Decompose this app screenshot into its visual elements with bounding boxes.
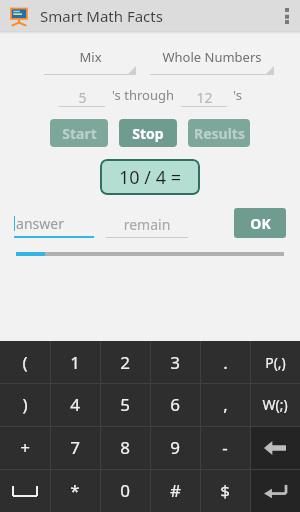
button[interactable]: 2 xyxy=(100,341,150,383)
button[interactable]: Mix xyxy=(44,47,136,75)
staticText: # xyxy=(170,479,181,502)
staticText: . xyxy=(223,351,228,374)
staticText: 7 xyxy=(70,436,80,459)
staticText: answer xyxy=(16,214,64,233)
button[interactable]: - xyxy=(200,426,250,469)
staticText: 's xyxy=(233,86,242,104)
button[interactable]: . xyxy=(200,341,250,383)
staticText: Whole Numbers xyxy=(162,48,262,66)
staticText: 9 xyxy=(170,436,180,459)
button[interactable]: Whole Numbers xyxy=(150,47,274,75)
button[interactable]: ) xyxy=(0,383,50,426)
button[interactable]: , xyxy=(200,383,250,426)
staticText: 3 xyxy=(170,351,180,374)
button[interactable]: 1 xyxy=(50,341,100,383)
staticText: Results xyxy=(194,124,245,143)
button[interactable]: W(;) xyxy=(250,383,300,426)
button[interactable]: 8 xyxy=(100,426,150,469)
staticText: 10 / 4 = xyxy=(119,165,181,190)
staticText: 2 xyxy=(120,351,130,374)
button[interactable]: Results xyxy=(188,119,250,147)
staticText: ( xyxy=(22,351,28,374)
button[interactable]: 3 xyxy=(150,341,200,383)
staticText: + xyxy=(20,436,30,459)
staticText: remain xyxy=(106,215,188,234)
button[interactable]: 9 xyxy=(150,426,200,469)
button[interactable]: Backspace xyxy=(250,426,300,469)
staticText: OK xyxy=(250,214,271,233)
button[interactable]: 6 xyxy=(150,383,200,426)
staticText: Mix xyxy=(79,48,102,66)
button[interactable]: 5 xyxy=(100,383,150,426)
button[interactable]: # xyxy=(150,469,200,512)
staticText: 's through xyxy=(112,86,174,104)
button[interactable]: 0 xyxy=(100,469,150,512)
button[interactable]: 4 xyxy=(50,383,100,426)
staticText: 5 xyxy=(120,393,130,416)
staticText: 6 xyxy=(170,393,180,416)
staticText: Smart Math Facts xyxy=(40,6,163,26)
staticText: 4 xyxy=(70,393,80,416)
staticText: 12 xyxy=(196,88,213,106)
button[interactable]: + xyxy=(0,426,50,469)
staticText: 1 xyxy=(70,351,80,374)
button[interactable]: Stop xyxy=(119,119,177,147)
button[interactable]: OK xyxy=(234,208,286,238)
button[interactable]: More options xyxy=(274,0,300,31)
button[interactable]: 12 xyxy=(181,88,227,107)
staticText: 0 xyxy=(120,479,130,502)
staticText: P(,) xyxy=(265,353,286,372)
button[interactable]: Space xyxy=(0,469,50,512)
button[interactable]: Enter xyxy=(250,469,300,512)
button[interactable]: * xyxy=(50,469,100,512)
staticText: ) xyxy=(22,393,28,416)
button[interactable]: 7 xyxy=(50,426,100,469)
staticText: 5 xyxy=(78,88,87,106)
staticText: - xyxy=(222,436,228,459)
staticText: Start xyxy=(62,124,97,143)
staticText: Stop xyxy=(132,124,164,143)
staticText: * xyxy=(70,479,80,502)
button[interactable]: P(,) xyxy=(250,341,300,383)
staticText: $ xyxy=(220,479,230,502)
button[interactable]: $ xyxy=(200,469,250,512)
button[interactable]: 5 xyxy=(59,88,105,107)
button[interactable]: ( xyxy=(0,341,50,383)
staticText: , xyxy=(223,393,228,416)
button[interactable]: Start xyxy=(50,119,108,147)
staticText: W(;) xyxy=(262,395,288,414)
staticText: 8 xyxy=(120,436,130,459)
